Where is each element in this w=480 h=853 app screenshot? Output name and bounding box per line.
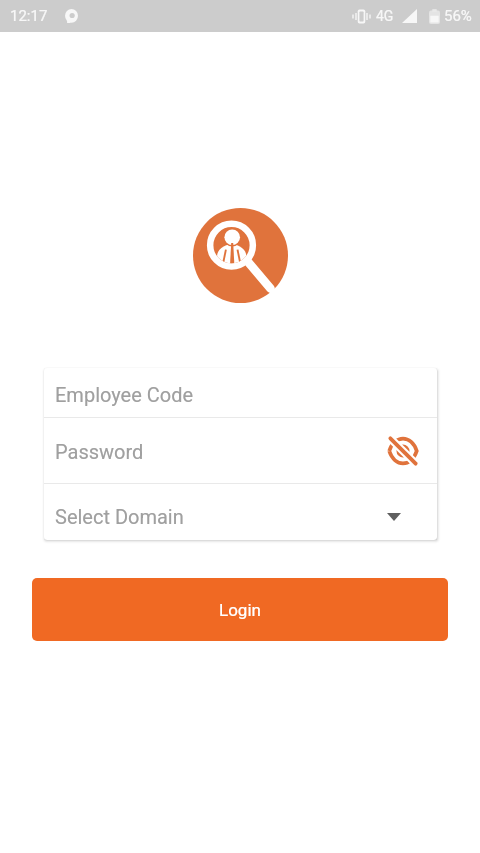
staticText: 56% bbox=[444, 7, 472, 25]
staticText: Password bbox=[55, 440, 144, 463]
staticText: 12:17 bbox=[10, 7, 48, 25]
button[interactable]: Select Domain bbox=[44, 484, 437, 540]
button[interactable]: Password bbox=[44, 418, 437, 483]
staticText: Select Domain bbox=[55, 505, 184, 528]
staticText: 4G bbox=[376, 8, 394, 24]
button[interactable]: Show password bbox=[385, 433, 421, 469]
button[interactable]: Login bbox=[32, 578, 448, 641]
staticText: Employee Code bbox=[55, 383, 194, 406]
staticText: Login bbox=[219, 600, 261, 620]
button[interactable]: Employee Code bbox=[44, 368, 437, 417]
